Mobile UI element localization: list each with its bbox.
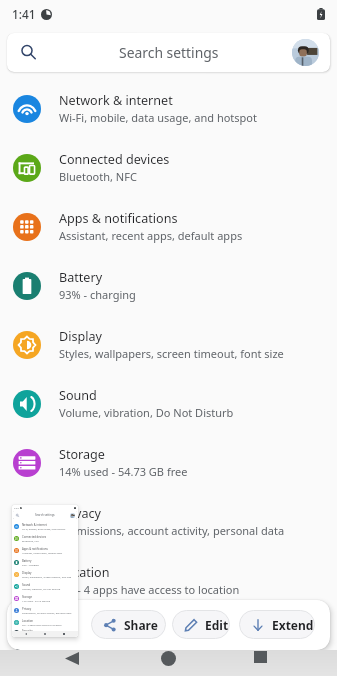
- staticText: Wi-Fi, mobile, data usage, and hotspot: [22, 527, 66, 530]
- staticText: Battery: [22, 559, 32, 563]
- staticText: 1:41: [12, 6, 36, 22]
- staticText: Volume, vibration, Do Not Disturb: [59, 405, 234, 420]
- button[interactable]: Sound: [0, 374, 337, 433]
- staticText: Bluetooth, NFC: [59, 169, 137, 184]
- staticText: Styles, wallpapers, screen timeout, font…: [22, 575, 72, 578]
- button[interactable]: Extend: [239, 610, 315, 639]
- button[interactable]: Display: [12, 568, 78, 580]
- staticText: Styles, wallpapers, screen timeout, font…: [59, 346, 284, 361]
- button[interactable]: Home: [161, 651, 176, 666]
- staticText: Extend: [272, 617, 314, 633]
- button[interactable]: Apps & notifications: [0, 197, 337, 256]
- staticText: Network & internet: [59, 92, 173, 109]
- button[interactable]: Security: [12, 628, 78, 637]
- staticText: Bluetooth, NFC: [22, 539, 40, 542]
- button[interactable]: Share: [91, 610, 166, 639]
- button[interactable]: Search settings: [7, 33, 330, 72]
- staticText: Display: [22, 571, 32, 575]
- button[interactable]: Location: [0, 551, 337, 610]
- staticText: Volume, vibration, Do Not Disturb: [22, 587, 61, 590]
- staticText: Sound: [22, 583, 31, 587]
- button[interactable]: Screenshot preview: [12, 505, 78, 637]
- button[interactable]: Privacy: [0, 492, 337, 551]
- button[interactable]: Storage: [12, 592, 78, 604]
- button[interactable]: Location: [12, 616, 78, 628]
- button[interactable]: Storage: [0, 433, 337, 492]
- button[interactable]: Apps & notifications: [12, 544, 78, 556]
- staticText: Security: [59, 623, 107, 640]
- staticText: Privacy: [59, 505, 102, 522]
- staticText: Storage: [59, 446, 105, 463]
- staticText: Wi-Fi, mobile, data usage, and hotspot: [59, 110, 257, 125]
- staticText: 1:41: [14, 506, 19, 509]
- staticText: Screen lock, fingerprint: [59, 641, 180, 656]
- staticText: Search settings: [35, 513, 55, 517]
- button[interactable]: Connected devices: [0, 138, 337, 197]
- staticText: On - 4 apps have access to location: [22, 623, 62, 626]
- staticText: Battery: [59, 269, 103, 286]
- button[interactable]: Network & internet: [12, 520, 78, 532]
- button[interactable]: Network & internet: [0, 79, 337, 138]
- staticText: Network & internet: [22, 523, 47, 527]
- staticText: Security: [22, 629, 33, 633]
- staticText: 14% used - 54.73 GB free: [22, 599, 51, 602]
- button[interactable]: Sound: [12, 580, 78, 592]
- button[interactable]: Security: [0, 610, 337, 669]
- staticText: Search settings: [119, 43, 219, 62]
- staticText: Apps & notifications: [22, 547, 48, 551]
- button[interactable]: Privacy: [12, 604, 78, 616]
- staticText: 93% - charging: [59, 287, 136, 302]
- button[interactable]: Display: [0, 315, 337, 374]
- staticText: Storage: [22, 595, 33, 599]
- staticText: 93% - charging: [22, 563, 39, 566]
- button[interactable]: Battery: [12, 556, 78, 568]
- staticText: Sound: [59, 387, 97, 404]
- staticText: Location: [59, 564, 110, 581]
- button[interactable]: Edit: [172, 610, 230, 639]
- staticText: Display: [59, 328, 102, 345]
- staticText: Screen lock, fingerprint: [22, 633, 49, 636]
- staticText: Connected devices: [59, 151, 170, 168]
- staticText: 14% used - 54.73 GB free: [59, 464, 188, 479]
- staticText: Privacy: [22, 607, 32, 611]
- button[interactable]: Search settings: [13, 511, 77, 519]
- staticText: Apps & notifications: [59, 210, 178, 227]
- button[interactable]: Battery: [0, 256, 337, 315]
- staticText: Assistant, recent apps, default apps: [59, 228, 243, 243]
- staticText: Connected devices: [22, 535, 47, 539]
- button[interactable]: Back: [65, 652, 79, 665]
- staticText: Assistant, recent apps, default apps: [22, 551, 63, 554]
- staticText: On - 4 apps have access to location: [59, 582, 240, 597]
- staticText: Location: [22, 619, 34, 623]
- staticText: Edit: [205, 617, 229, 633]
- staticText: Permissions, account activity, personal …: [59, 523, 285, 538]
- staticText: Permissions, account activity, personal …: [22, 611, 72, 614]
- button[interactable]: Connected devices: [12, 532, 78, 544]
- staticText: Share: [124, 617, 158, 633]
